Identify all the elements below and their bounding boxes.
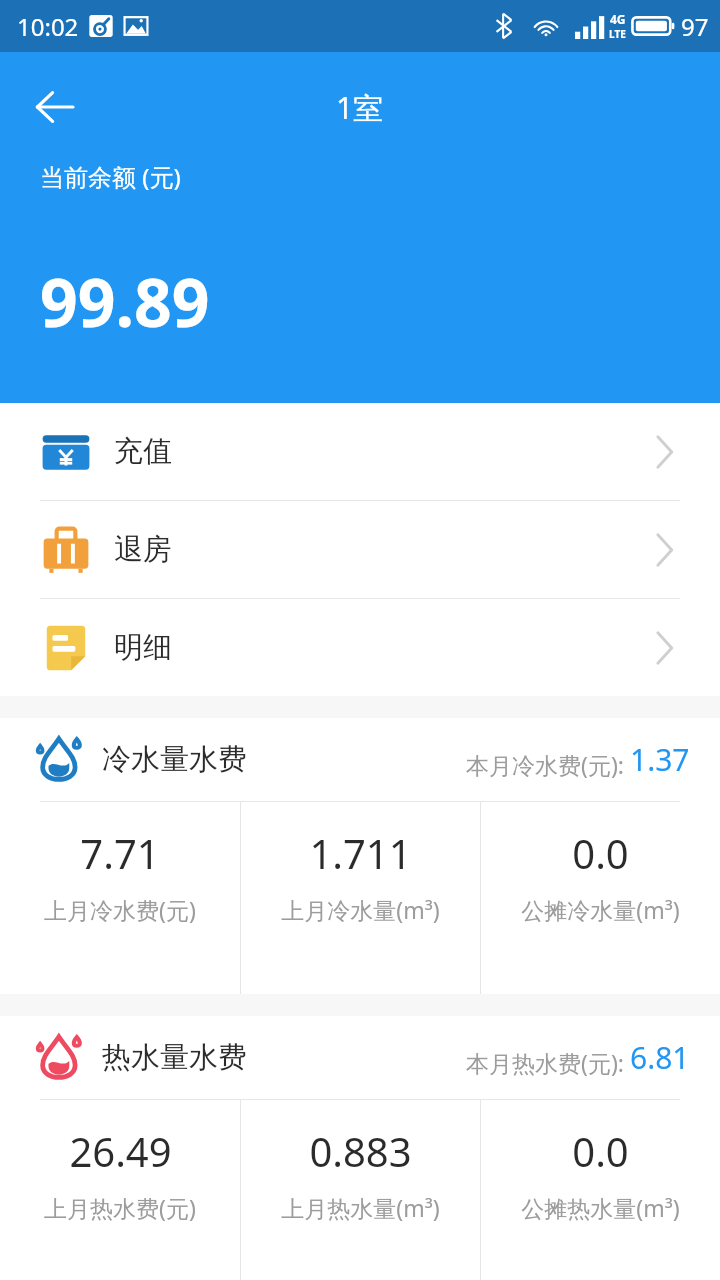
- staticText: 公摊热水量(m³): [521, 1192, 680, 1223]
- button[interactable]: Back: [20, 72, 90, 142]
- staticText: 上月热水费(元): [44, 1192, 196, 1223]
- staticText: 26.49: [69, 1124, 172, 1178]
- staticText: 0.0: [572, 826, 629, 880]
- staticText: 冷水量水费: [102, 741, 247, 778]
- button[interactable]: 明细: [0, 599, 720, 696]
- staticText: 1室: [336, 87, 384, 128]
- staticText: 上月冷水量(m³): [281, 894, 440, 925]
- staticText: 上月冷水费(元): [44, 894, 196, 925]
- staticText: 上月热水量(m³): [281, 1192, 440, 1223]
- staticText: 4G: [610, 11, 626, 27]
- button[interactable]: 冷水量水费: [0, 718, 720, 801]
- staticText: 1.37: [630, 739, 690, 780]
- staticText: 本月热水费(元):: [466, 1047, 630, 1078]
- staticText: 明细: [114, 629, 172, 666]
- staticText: 10:02: [17, 10, 79, 43]
- staticText: 0.0: [572, 1124, 629, 1178]
- staticText: 1.711: [309, 826, 412, 880]
- staticText: 97: [681, 10, 709, 43]
- staticText: 6.81: [630, 1037, 690, 1078]
- staticText: 99.89: [40, 256, 210, 346]
- staticText: LTE: [609, 27, 626, 41]
- staticText: 充值: [114, 433, 172, 470]
- staticText: 热水量水费: [102, 1039, 247, 1076]
- staticText: 本月冷水费(元):: [466, 749, 630, 780]
- staticText: 退房: [114, 531, 172, 568]
- button[interactable]: 退房: [0, 501, 720, 598]
- staticText: 0.883: [309, 1124, 412, 1178]
- staticText: 公摊冷水量(m³): [521, 894, 680, 925]
- button[interactable]: 热水量水费: [0, 1016, 720, 1099]
- staticText: 当前余额 (元): [40, 160, 181, 193]
- button[interactable]: 充值: [0, 403, 720, 500]
- staticText: 7.71: [80, 826, 160, 880]
